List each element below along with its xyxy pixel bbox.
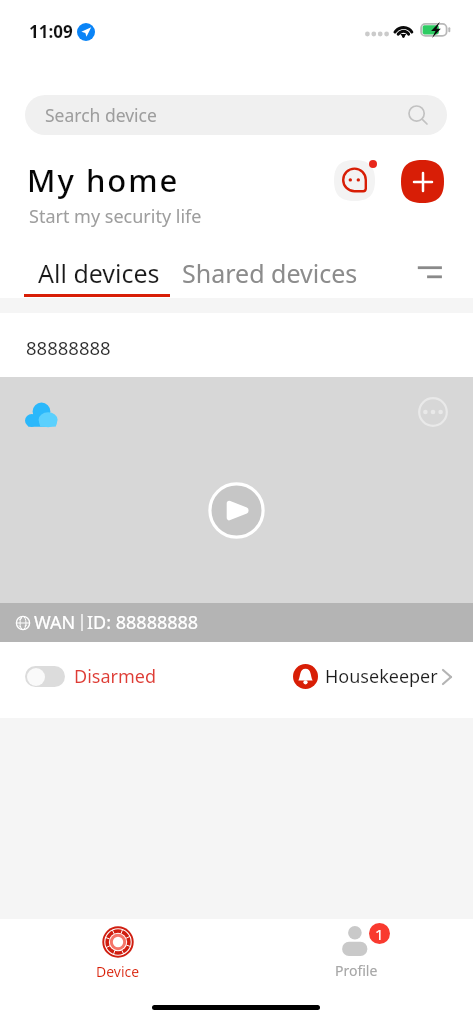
staticText: 1 [375, 924, 384, 944]
staticText: Housekeeper [325, 664, 438, 689]
button[interactable]: Filter [412, 258, 444, 290]
staticText: Profile [335, 961, 378, 980]
staticText: 88888888 [26, 335, 111, 360]
button[interactable]: Play [207, 481, 266, 540]
button[interactable]: Profile [296, 919, 414, 989]
staticText: WAN [34, 610, 76, 635]
button[interactable]: Messages [334, 160, 378, 204]
button[interactable]: More options [0, 377, 473, 642]
button[interactable]: More options [418, 397, 448, 427]
staticText: Shared devices [182, 256, 358, 290]
button[interactable]: Housekeeper [293, 664, 454, 689]
button[interactable]: Shared devices [176, 255, 364, 295]
staticText: All devices [38, 256, 160, 290]
staticText: My home [27, 159, 180, 201]
button[interactable]: All devices [20, 255, 175, 303]
staticText: Start my security life [29, 204, 202, 229]
staticText: Device [96, 962, 140, 981]
staticText: ID: 88888888 [87, 610, 199, 635]
button[interactable]: Disarmed [25, 664, 156, 689]
staticText: 11:09 [29, 20, 73, 43]
staticText: Disarmed [74, 664, 156, 689]
button[interactable]: Device [59, 919, 177, 989]
button[interactable]: Add device [401, 160, 444, 203]
staticText: Search device [45, 103, 157, 127]
button[interactable]: Search device [25, 95, 447, 135]
